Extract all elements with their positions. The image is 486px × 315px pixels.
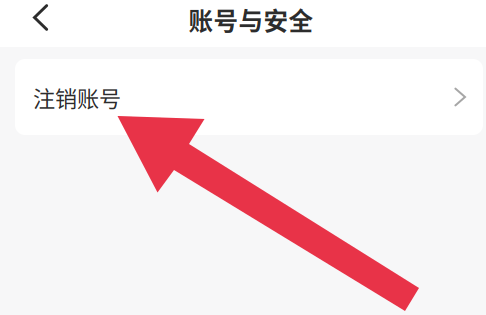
staticText: 注销账号 bbox=[33, 81, 121, 113]
button[interactable]: 注销账号 bbox=[15, 59, 483, 135]
button[interactable]: Back bbox=[0, 0, 66, 47]
staticText: 账号与安全 bbox=[188, 2, 313, 37]
